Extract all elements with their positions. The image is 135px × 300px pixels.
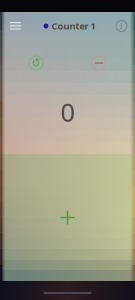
staticText: i [120,20,123,32]
button[interactable]: Reset [29,56,43,70]
button[interactable]: Menu [4,13,27,39]
staticText: Counter 1 [51,20,95,32]
button[interactable]: Increment [0,154,135,281]
button[interactable]: Info [112,12,131,39]
staticText: 0 [60,95,74,129]
button[interactable]: Decrement [92,56,106,70]
